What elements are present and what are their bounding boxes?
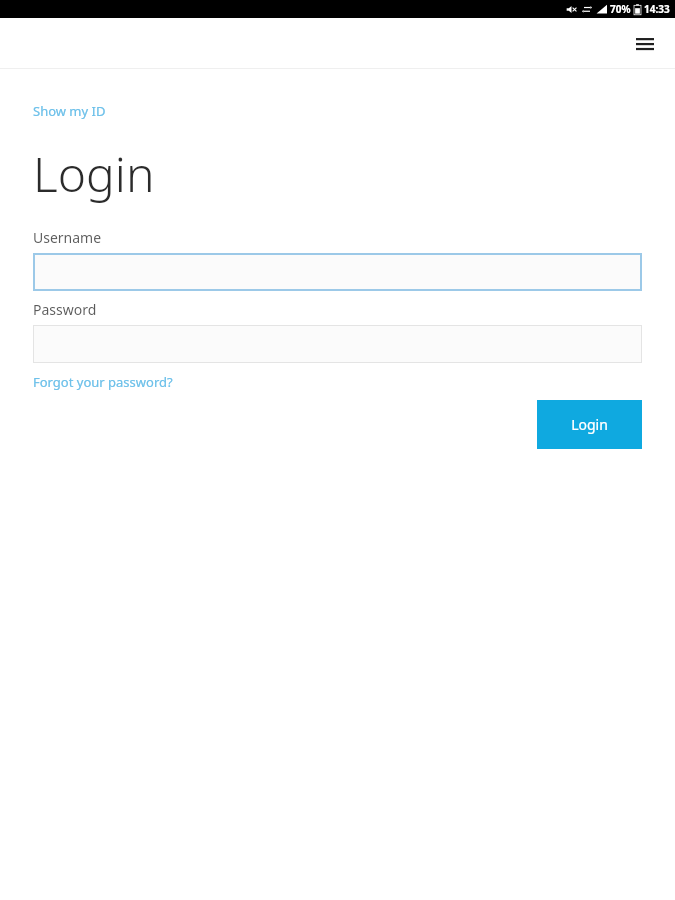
button[interactable]: Forgot your password? [33,373,173,391]
staticText: Show my ID [33,102,106,120]
button[interactable]: Login [537,400,642,449]
staticText: Password [33,300,97,319]
staticText: 70% [610,2,631,16]
staticText: 14:33 [644,2,670,16]
staticText: Login [33,141,155,206]
button[interactable] [33,325,642,363]
button[interactable]: Show my ID [33,102,106,120]
staticText: Forgot your password? [33,373,173,391]
staticText: Login [571,415,608,434]
button[interactable]: Menu [623,21,667,65]
staticText: Username [33,228,102,247]
